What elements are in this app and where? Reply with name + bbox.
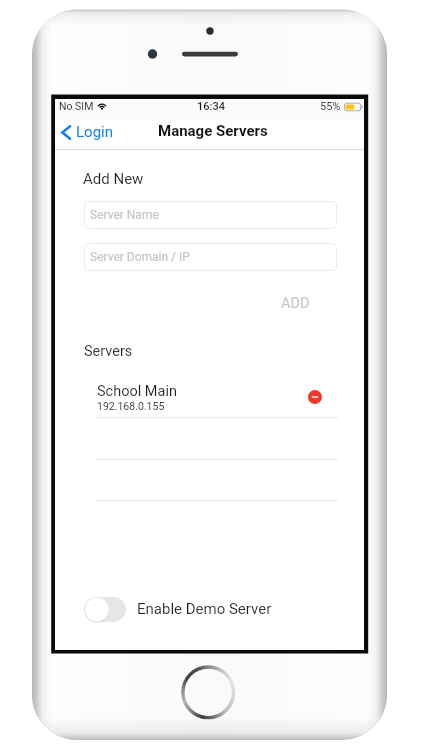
staticText: Server Name: [90, 208, 159, 222]
staticText: Enable Demo Server: [137, 600, 272, 618]
button[interactable]: School Main: [96, 379, 340, 417]
staticText: 192.168.0.155: [97, 400, 165, 412]
staticText: No SIM: [59, 100, 94, 112]
staticText: Server Domain / IP: [90, 250, 190, 264]
button[interactable]: ADD: [250, 291, 310, 315]
staticText: 16:34: [197, 100, 225, 113]
staticText: Manage Servers: [158, 122, 268, 140]
button[interactable]: Enable Demo Server: [84, 590, 272, 628]
staticText: School Main: [97, 383, 177, 400]
staticText: ADD: [281, 295, 310, 312]
button[interactable]: Server Name: [84, 201, 337, 229]
staticText: Login: [76, 123, 113, 141]
button[interactable]: Server Domain / IP: [84, 243, 337, 271]
button[interactable]: Remove server: [304, 386, 326, 408]
button[interactable]: Login: [55, 120, 121, 144]
staticText: 55%: [320, 100, 341, 113]
staticText: Add New: [83, 170, 144, 188]
staticText: Servers: [84, 343, 133, 360]
